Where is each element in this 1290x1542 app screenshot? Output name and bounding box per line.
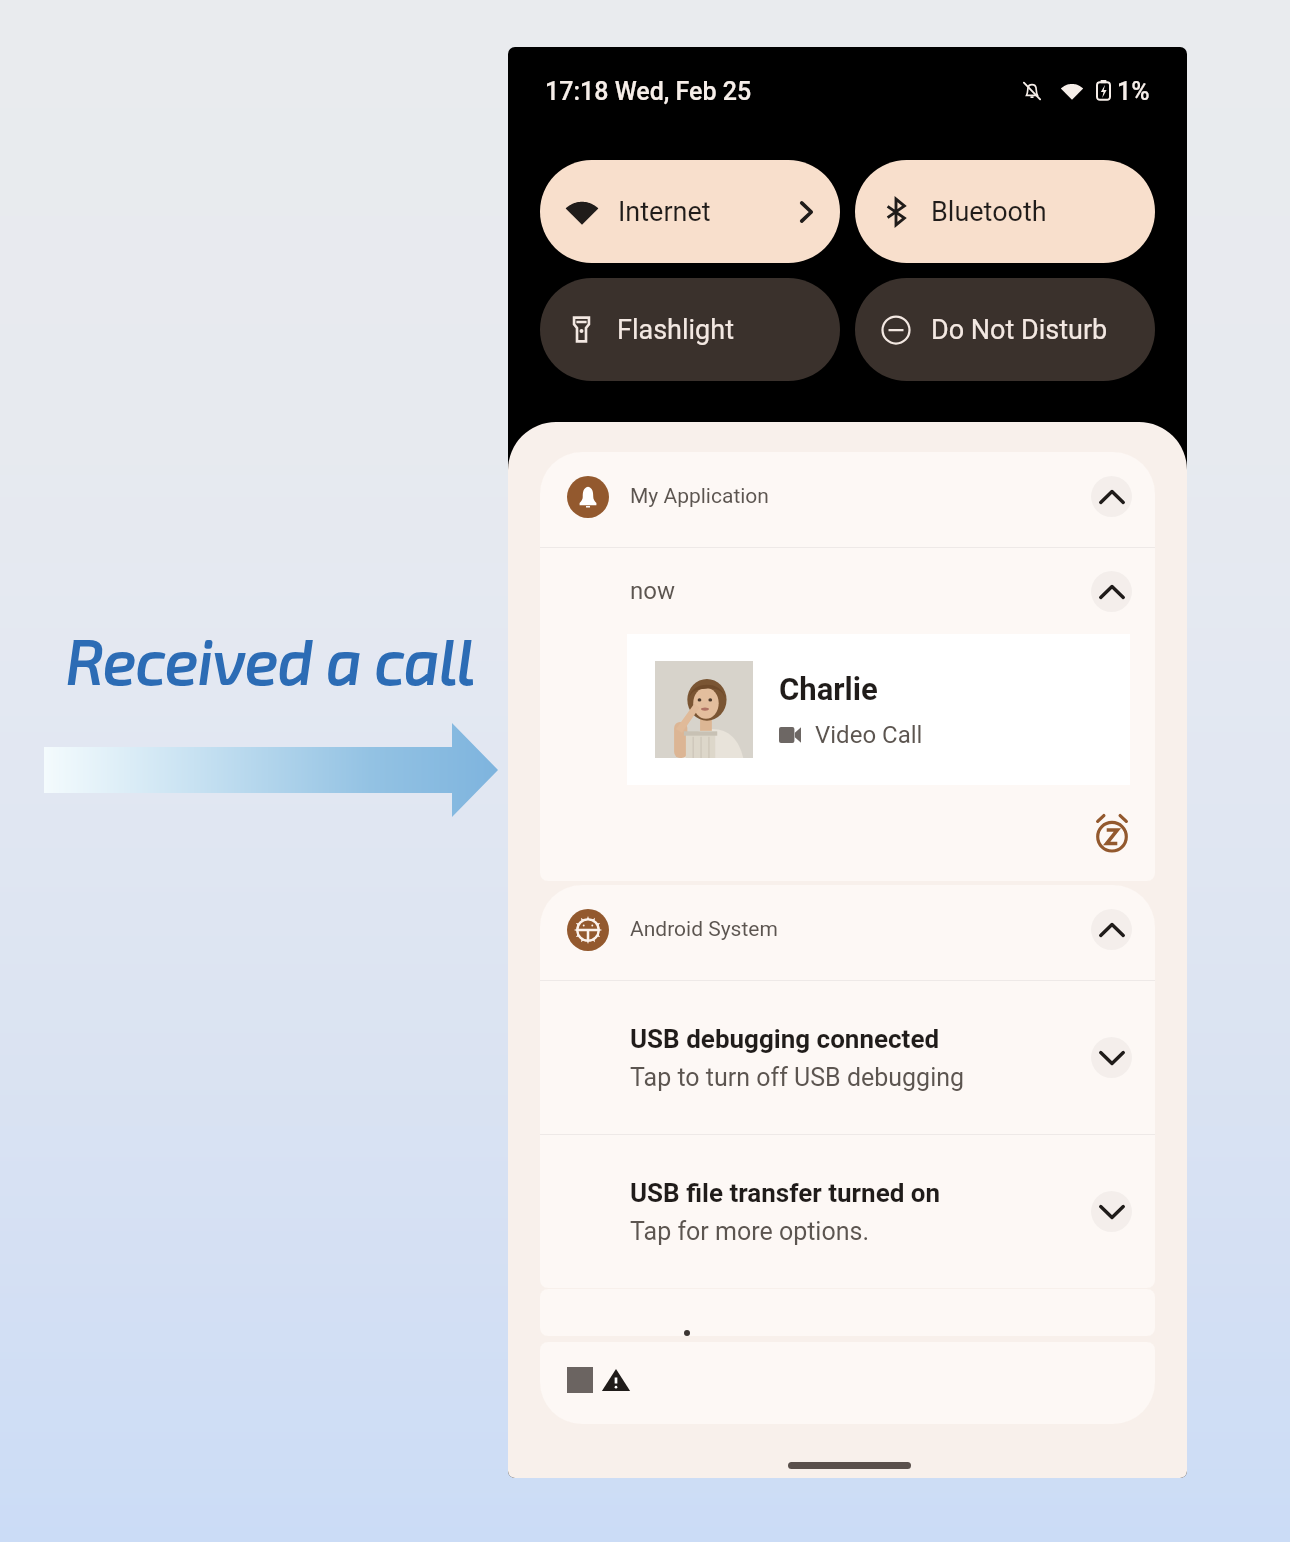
staticText: Tap to turn off USB debugging (630, 1063, 965, 1092)
button[interactable]: My Application (540, 452, 1155, 547)
staticText: My Application (630, 484, 769, 509)
button[interactable]: Android System (540, 885, 1155, 980)
staticText: Charlie (779, 671, 878, 707)
button[interactable]: USB file transfer turned on (540, 1135, 1155, 1288)
button[interactable]: Collapse notification (1091, 476, 1132, 517)
staticText: 17:18 Wed, Feb 25 (545, 77, 752, 106)
button[interactable]: Expand notification (1091, 1191, 1132, 1232)
button[interactable]: Do Not Disturb (855, 278, 1155, 381)
button[interactable]: Silent notifications (540, 1342, 1155, 1424)
button[interactable]: Expand notification (1091, 1037, 1132, 1078)
button[interactable]: Collapse notification (1091, 909, 1132, 950)
button[interactable]: Collapse notification (1091, 571, 1132, 612)
staticText: 1% (1117, 77, 1150, 106)
staticText: now (630, 577, 675, 605)
button[interactable]: Snooze (1090, 811, 1134, 855)
staticText: USB file transfer turned on (630, 1178, 941, 1208)
staticText: Bluetooth (931, 196, 1047, 228)
staticText: Tap for more options. (630, 1217, 869, 1246)
staticText: Internet (618, 196, 711, 228)
button[interactable]: Collapsed notification (540, 1289, 1155, 1336)
button[interactable]: Bluetooth (855, 160, 1155, 263)
staticText: Video Call (815, 721, 923, 749)
staticText: Received a call (66, 623, 475, 696)
button[interactable]: USB debugging connected (540, 981, 1155, 1134)
staticText: Flashlight (617, 314, 734, 346)
button[interactable]: now (540, 548, 1155, 881)
staticText: Do Not Disturb (931, 314, 1108, 346)
staticText: USB debugging connected (630, 1024, 940, 1054)
button[interactable]: Flashlight (540, 278, 840, 381)
staticText: Android System (630, 917, 778, 942)
button[interactable]: Internet (540, 160, 840, 263)
